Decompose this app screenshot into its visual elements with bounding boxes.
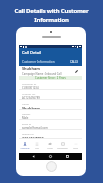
button[interactable]: Customer ID	[19, 80, 82, 90]
staticText: Customer ID	[22, 82, 37, 85]
staticText: Notes	[47, 147, 53, 150]
staticText: Campaign Name : Inbound Call	[22, 72, 62, 76]
staticText: Disposition	[57, 147, 68, 150]
button[interactable]: Name	[19, 100, 82, 110]
staticText: Gender	[22, 112, 31, 115]
button[interactable]: Customer Information	[22, 57, 79, 66]
button[interactable]: Call Detail	[19, 48, 82, 57]
staticText: Name	[22, 102, 29, 105]
staticText: Call	[35, 147, 39, 150]
button[interactable]: Customer	[19, 139, 31, 153]
staticText: sample@gmail.com	[22, 126, 48, 130]
staticText: Male	[22, 116, 29, 120]
staticText: Account No.	[22, 92, 36, 95]
staticText: AC123456789	[22, 96, 40, 100]
staticText: Shubham	[22, 66, 40, 71]
staticText: Customer	[20, 147, 30, 150]
button[interactable]: More	[69, 139, 82, 153]
staticText: Call Details with Customer Information	[0, 7, 103, 24]
staticText: Mobile No.	[22, 132, 35, 135]
button[interactable]: Home	[48, 154, 53, 159]
button[interactable]: Account No.	[19, 90, 82, 100]
staticText: Customer Since : 2 Years	[35, 76, 66, 80]
button[interactable]: Gender	[19, 110, 82, 120]
staticText: Shubham	[22, 106, 40, 110]
button[interactable]: Notes	[43, 139, 56, 153]
button[interactable]: Disposition	[56, 139, 69, 153]
button[interactable]: Email Id	[19, 120, 82, 130]
button[interactable]: Call	[31, 139, 43, 153]
staticText: CUS0001234	[22, 86, 39, 90]
staticText: CALLS	[70, 60, 79, 64]
staticText: Email Id	[22, 122, 32, 125]
button[interactable]: Back	[31, 154, 36, 159]
staticText: Call Detail	[22, 50, 42, 55]
button[interactable]: Mobile No.	[19, 130, 82, 139]
button[interactable]: Recent apps	[65, 154, 70, 159]
button[interactable]: Edit	[74, 69, 79, 74]
staticText: 1234567890	[22, 136, 44, 139]
staticText: More	[73, 147, 78, 150]
staticText: Customer Information	[22, 60, 55, 64]
